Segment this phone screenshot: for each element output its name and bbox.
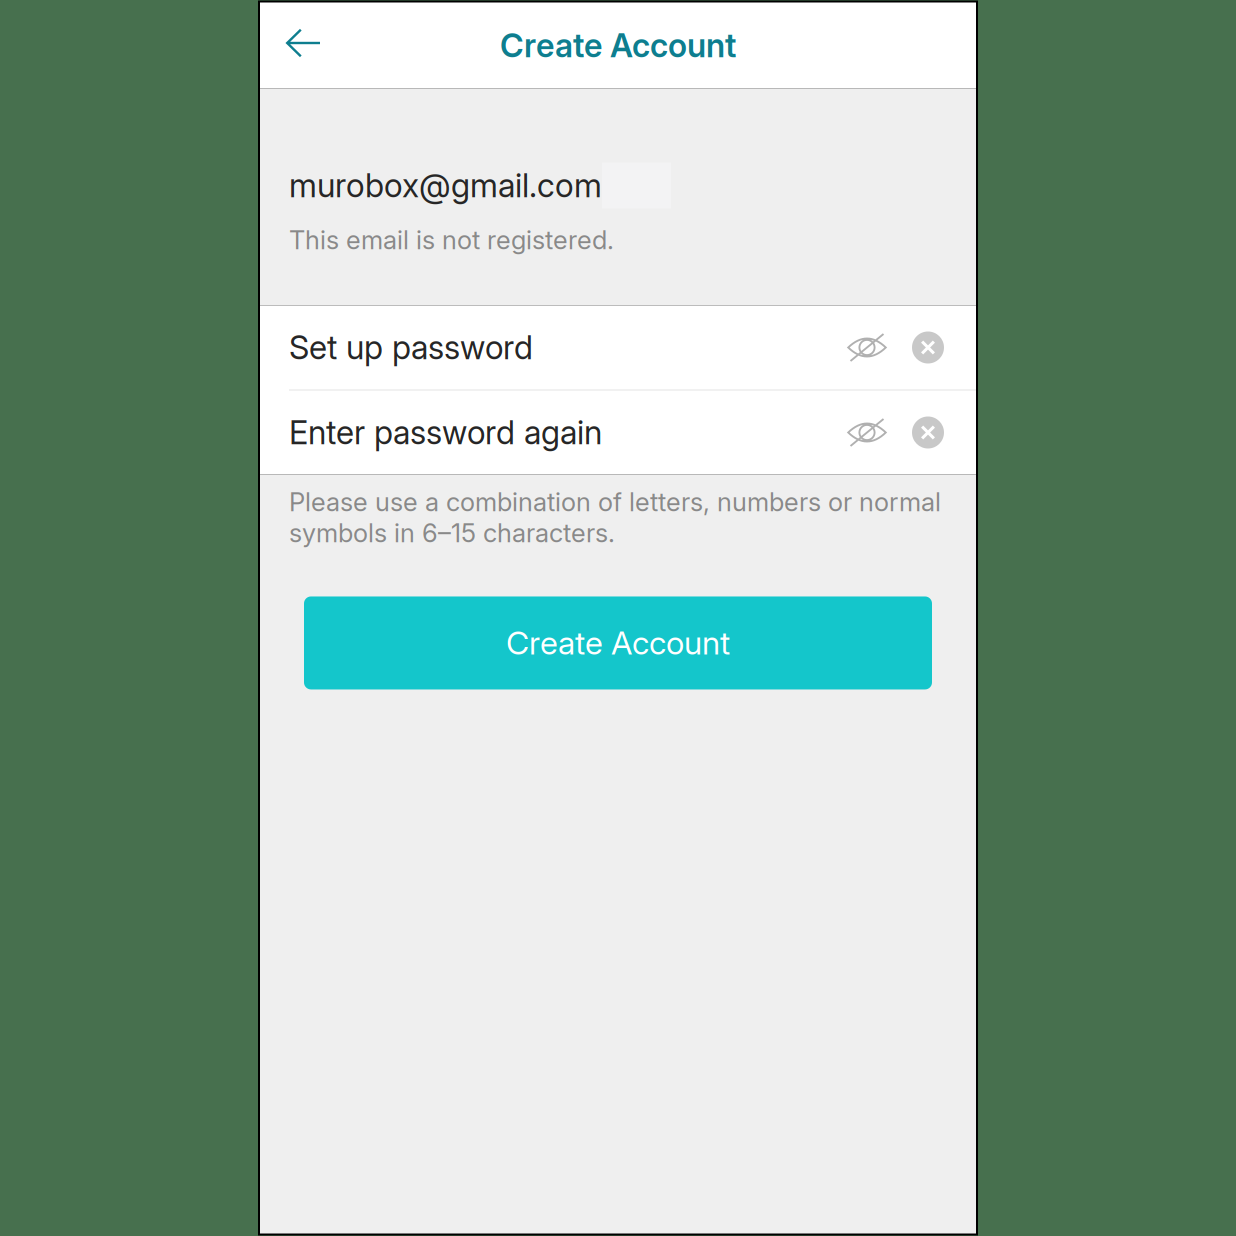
staticText: Please use a combination of letters, num… [289, 486, 941, 548]
button[interactable]: Create Account [304, 596, 932, 689]
button[interactable]: Show Enter password again [837, 390, 899, 474]
staticText: Create Account [506, 624, 730, 662]
staticText: This email is not registered. [289, 224, 614, 255]
staticText: Create Account [500, 26, 736, 65]
button[interactable]: Back [260, 2, 336, 88]
button[interactable]: Show Set up password [837, 305, 899, 389]
staticText: murobox@gmail.com [289, 166, 602, 205]
button[interactable]: Clear Enter password again [899, 390, 944, 474]
button[interactable]: Clear Set up password [899, 305, 944, 389]
staticText: Set up password [289, 328, 533, 367]
staticText: Enter password again [289, 413, 602, 452]
